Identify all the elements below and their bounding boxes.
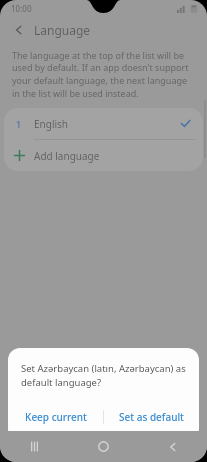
staticText: 1 — [16, 118, 22, 130]
button[interactable]: Back — [138, 431, 207, 462]
staticText: Language — [34, 22, 91, 38]
button[interactable]: Back — [8, 19, 30, 41]
button[interactable]: 1 — [4, 108, 203, 139]
button[interactable]: Set as default — [104, 403, 199, 431]
staticText: Set as default — [119, 410, 184, 424]
staticText: Add language — [34, 149, 100, 163]
button[interactable]: Home — [69, 431, 138, 462]
button[interactable]: Recents — [0, 431, 69, 462]
staticText: Keep current — [25, 410, 87, 424]
button[interactable]: Keep current — [8, 403, 103, 431]
button[interactable]: Add language — [4, 140, 203, 171]
staticText: The language at the top of the list will… — [12, 49, 193, 100]
staticText: English — [34, 117, 69, 131]
staticText: Set Azərbaycan (latın, Azərbaycan) as de… — [21, 362, 186, 389]
staticText: 10:00 — [11, 3, 32, 14]
